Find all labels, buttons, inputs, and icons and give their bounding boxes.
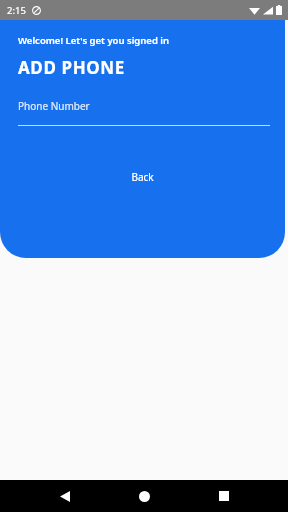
staticText: 2:15 — [7, 4, 26, 17]
staticText: Welcome! Let's get you signed in — [18, 34, 170, 47]
button[interactable]: Phone Number — [18, 99, 270, 126]
staticText: ADD PHONE — [18, 56, 125, 79]
button[interactable]: Recent apps — [209, 481, 239, 511]
button[interactable]: Back — [0, 164, 285, 190]
button[interactable]: Back — [50, 481, 80, 511]
staticText: Back — [131, 170, 154, 184]
staticText: Phone Number — [18, 99, 90, 113]
button[interactable]: Home — [129, 481, 159, 511]
